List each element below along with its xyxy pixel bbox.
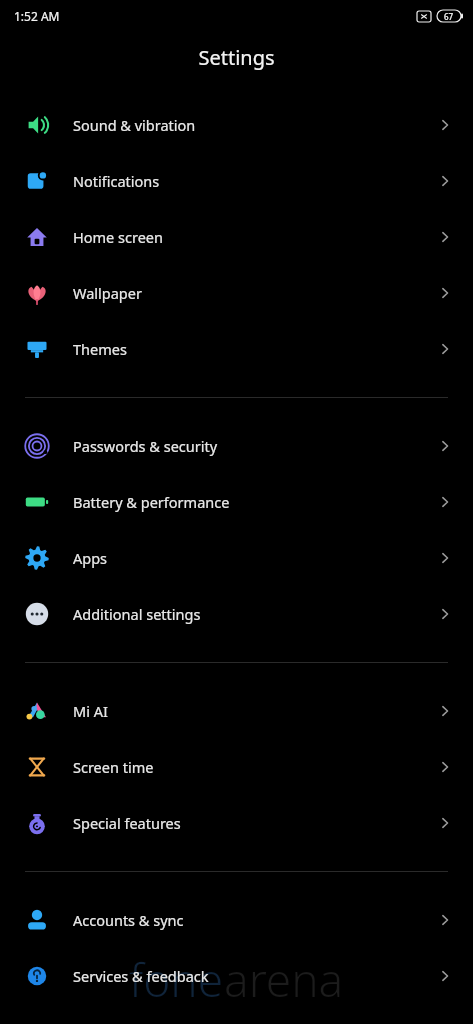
staticText: fone (129, 948, 224, 1011)
staticText: Apps (73, 548, 108, 568)
button[interactable]: Wallpaper (0, 265, 473, 321)
staticText: 1:52 AM (14, 8, 60, 24)
staticText: arena (224, 948, 344, 1011)
button[interactable]: Screen time (0, 739, 473, 795)
button[interactable]: Notifications (0, 153, 473, 209)
button[interactable]: Accounts & sync (0, 892, 473, 948)
button[interactable]: Sound & vibration (0, 97, 473, 153)
staticText: 67 (444, 11, 454, 22)
button[interactable]: Services & feedback (0, 948, 473, 1004)
button[interactable]: Mi AI (0, 683, 473, 739)
staticText: Settings (198, 44, 275, 71)
staticText: Home screen (73, 227, 163, 247)
button[interactable]: Additional settings (0, 586, 473, 642)
staticText: Special features (73, 813, 181, 833)
staticText: Passwords & security (73, 436, 218, 456)
button[interactable]: Special features (0, 795, 473, 851)
staticText: Wallpaper (73, 283, 142, 303)
staticText: Mi AI (73, 701, 108, 721)
button[interactable]: Battery & performance (0, 474, 473, 530)
button[interactable]: Passwords & security (0, 418, 473, 474)
staticText: Sound & vibration (73, 115, 196, 135)
button[interactable]: Apps (0, 530, 473, 586)
staticText: Notifications (73, 171, 160, 191)
button[interactable]: Home screen (0, 209, 473, 265)
button[interactable]: Themes (0, 321, 473, 377)
staticText: Accounts & sync (73, 910, 184, 930)
staticText: Services & feedback (73, 966, 209, 986)
staticText: Battery & performance (73, 492, 230, 512)
staticText: Screen time (73, 757, 154, 777)
staticText: Additional settings (73, 604, 201, 624)
staticText: Themes (73, 339, 127, 359)
